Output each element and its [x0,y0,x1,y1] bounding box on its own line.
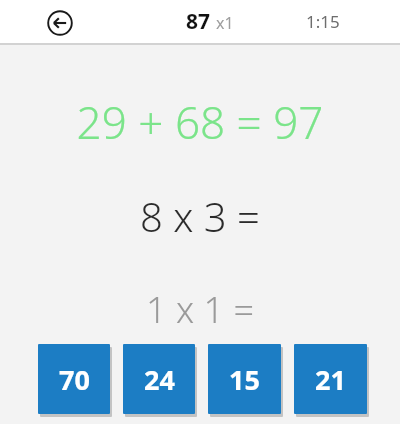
staticText: 1:15 [306,10,340,33]
staticText: 87 [186,7,211,36]
staticText: 21 [315,361,346,398]
staticText: 24 [144,361,175,398]
staticText: 70 [59,361,90,398]
button[interactable]: 15 [208,344,281,414]
button[interactable]: 21 [294,344,367,414]
button[interactable]: Back [44,7,76,39]
button[interactable]: 70 [38,344,110,414]
staticText: 29 + 68 = 97 [0,92,400,152]
staticText: 8 x 3 = [0,189,400,243]
button[interactable]: 24 [123,344,195,414]
staticText: 1 x 1 = [0,285,400,334]
staticText: x1 [216,12,234,34]
staticText: 15 [229,361,260,398]
